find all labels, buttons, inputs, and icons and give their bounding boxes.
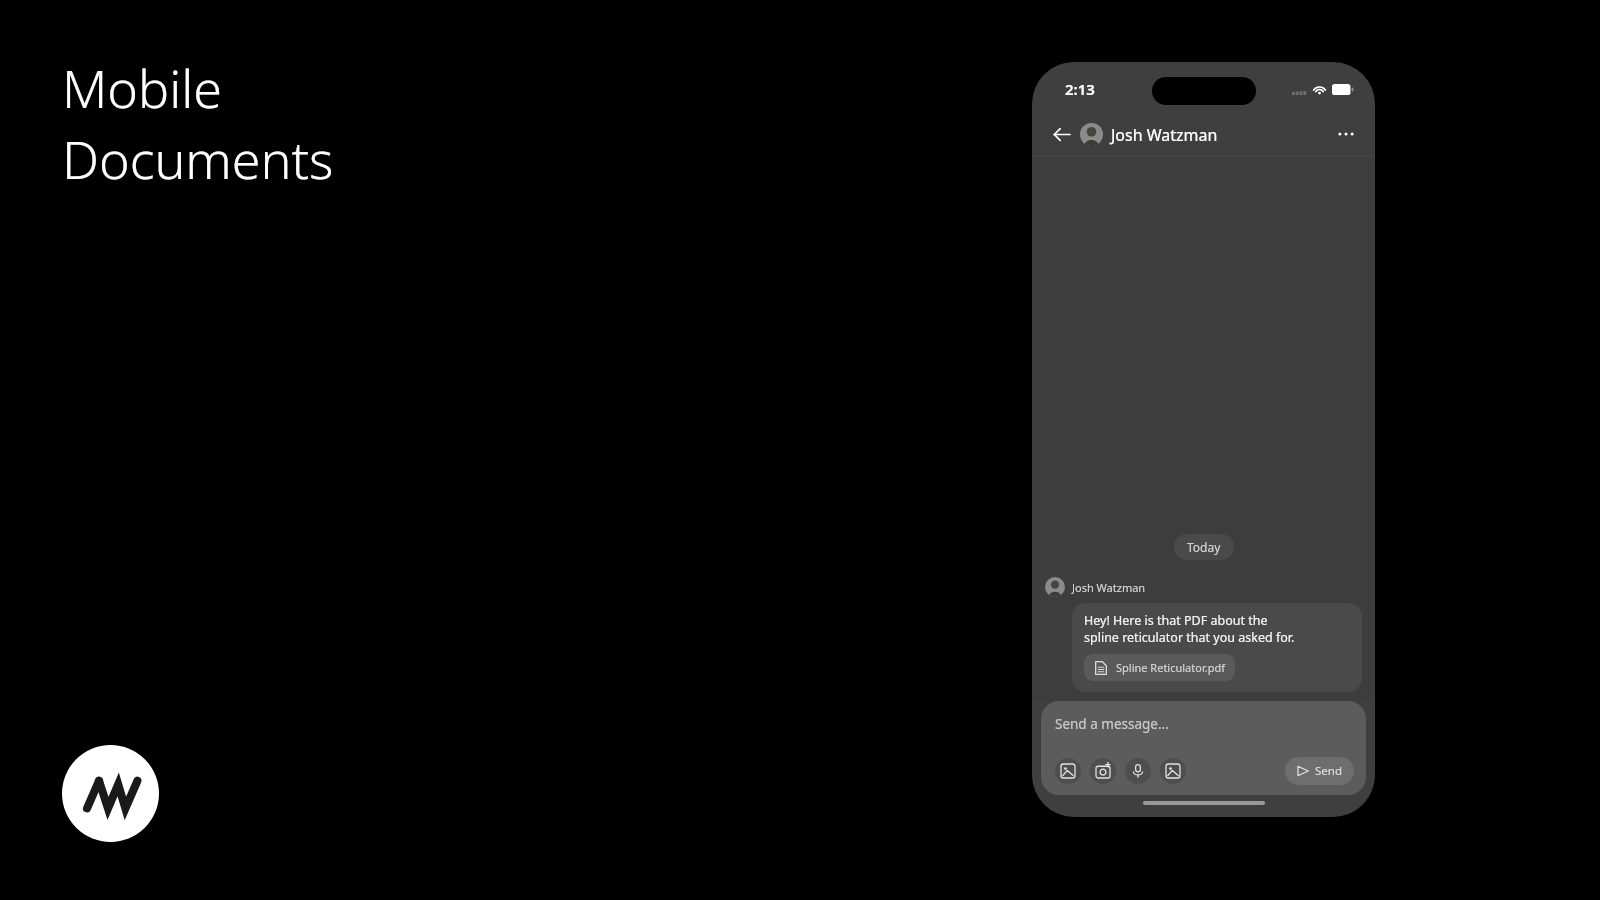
button[interactable]: Gallery — [1160, 758, 1186, 784]
staticText: Josh Watzman — [1072, 580, 1146, 595]
staticText: Josh Watzman — [1111, 124, 1218, 146]
button[interactable]: Back — [1046, 119, 1076, 149]
button[interactable]: Camera — [1090, 758, 1116, 784]
button[interactable]: Voice message — [1125, 758, 1151, 784]
staticText: 2:13 — [1065, 79, 1095, 99]
button[interactable]: Send — [1285, 757, 1354, 785]
staticText: Send a message... — [1055, 715, 1169, 733]
staticText: Documents — [62, 123, 334, 194]
button[interactable]: Josh Watzman — [1080, 123, 1218, 146]
button[interactable]: Photos — [1055, 758, 1081, 784]
button[interactable]: Send a message... — [1041, 701, 1366, 795]
staticText: Hey! Here is that PDF about the spline r… — [1084, 612, 1295, 646]
staticText: Today — [1187, 539, 1221, 555]
button[interactable]: More options — [1331, 119, 1361, 149]
staticText: Send — [1315, 763, 1342, 779]
other: Logo — [62, 745, 159, 842]
staticText: Mobile — [62, 52, 223, 123]
button[interactable]: Hey! Here is that PDF about the spline r… — [1072, 603, 1362, 692]
button[interactable]: Spline Reticulator.pdf — [1084, 654, 1235, 681]
staticText: Spline Reticulator.pdf — [1116, 660, 1225, 675]
